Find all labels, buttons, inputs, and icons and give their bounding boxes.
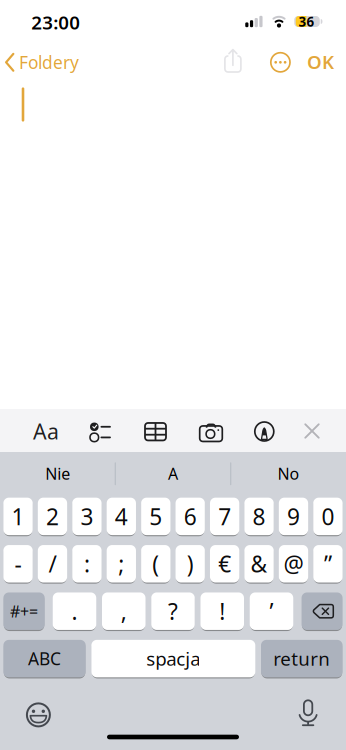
staticText: / (48, 549, 56, 579)
staticText: #+= (10, 601, 38, 622)
button[interactable]: ! (200, 591, 244, 631)
staticText: 0 (321, 501, 334, 531)
button[interactable]: . (53, 591, 96, 631)
staticText: & (251, 549, 268, 579)
button[interactable] (224, 48, 242, 72)
button[interactable] (302, 591, 343, 631)
button[interactable]: 0 (313, 497, 343, 536)
staticText: 7 (218, 501, 231, 531)
button[interactable]: spacja (91, 639, 255, 678)
button[interactable]: Aa (33, 417, 59, 445)
button[interactable]: #+= (3, 591, 45, 631)
staticText: @ (283, 549, 303, 579)
staticText: return (273, 646, 330, 671)
staticText: 9 (287, 501, 300, 531)
button[interactable]: OK (307, 49, 334, 74)
staticText: ’ (269, 596, 273, 626)
button[interactable]: 7 (210, 497, 239, 536)
button[interactable]: A (118, 453, 228, 493)
button[interactable]: 2 (38, 497, 67, 536)
staticText: 8 (253, 501, 266, 531)
button[interactable]: : (72, 544, 102, 583)
staticText: spacja (146, 646, 200, 671)
staticText: 36 (299, 13, 315, 30)
staticText: Foldery (19, 51, 79, 74)
button[interactable]: ; (107, 544, 136, 583)
staticText: ABC (28, 647, 61, 670)
button[interactable]: 4 (107, 497, 136, 536)
button[interactable] (270, 52, 290, 72)
button[interactable]: ( (141, 544, 170, 583)
button[interactable]: No (233, 453, 343, 493)
button[interactable]: € (210, 544, 239, 583)
staticText: 3 (80, 501, 93, 531)
button[interactable]: 3 (72, 497, 102, 536)
staticText: . (71, 596, 77, 626)
button[interactable] (255, 422, 274, 441)
staticText: ” (324, 549, 332, 579)
button[interactable]: / (38, 544, 67, 583)
staticText: 2 (46, 501, 59, 531)
button[interactable]: & (244, 544, 274, 583)
button[interactable]: - (3, 544, 33, 583)
button[interactable] (304, 423, 319, 438)
staticText: , (121, 596, 127, 626)
staticText: € (218, 549, 231, 579)
button[interactable]: 9 (279, 497, 308, 536)
button[interactable]: ) (176, 544, 205, 583)
button[interactable]: 6 (176, 497, 205, 536)
button[interactable]: return (261, 639, 343, 678)
staticText: 5 (149, 501, 162, 531)
staticText: ; (118, 549, 124, 579)
staticText: Aa (33, 417, 59, 445)
button[interactable]: ABC (3, 639, 86, 678)
button[interactable] (27, 703, 50, 726)
button[interactable]: 8 (244, 497, 274, 536)
staticText: 23:00 (31, 10, 80, 35)
staticText: ) (187, 549, 194, 579)
staticText: - (15, 549, 22, 579)
button[interactable] (199, 421, 222, 441)
staticText: 6 (184, 501, 197, 531)
staticText: No (277, 463, 299, 484)
button[interactable]: ” (313, 544, 343, 583)
button[interactable] (89, 422, 111, 441)
staticText: ( (152, 549, 159, 579)
staticText: 1 (12, 501, 25, 531)
button[interactable] (145, 423, 166, 441)
staticText: A (168, 463, 178, 484)
button[interactable]: , (102, 591, 145, 631)
button[interactable]: ? (151, 591, 195, 631)
button[interactable]: ’ (250, 591, 293, 631)
staticText: ? (168, 596, 178, 626)
button[interactable]: 5 (141, 497, 170, 536)
staticText: Nie (45, 463, 70, 484)
button[interactable]: Nie (3, 453, 113, 493)
button[interactable]: Foldery (0, 0, 346, 750)
button[interactable] (299, 699, 317, 726)
staticText: ! (219, 596, 225, 626)
button[interactable]: @ (279, 544, 308, 583)
button[interactable]: 1 (3, 497, 33, 536)
staticText: 4 (115, 501, 128, 531)
staticText: : (84, 549, 90, 579)
staticText: OK (307, 49, 334, 74)
